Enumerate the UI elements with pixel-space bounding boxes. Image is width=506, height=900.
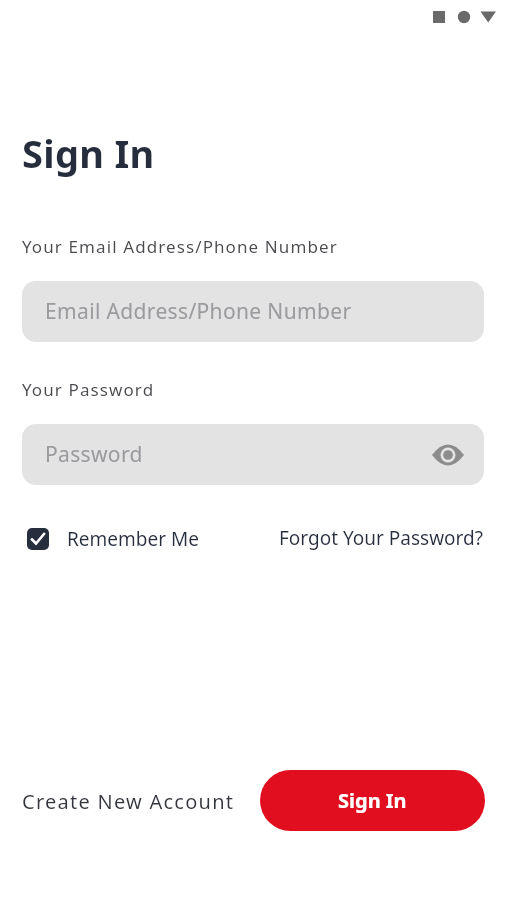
button[interactable]: Create New Account [22,788,235,815]
button[interactable]: Password [22,424,484,485]
staticText: Remember Me [67,526,199,552]
staticText: Your Email Address/Phone Number [22,235,338,258]
staticText: Your Password [22,378,155,401]
button[interactable]: Forgot Your Password? [279,525,484,551]
button[interactable]: Remember Me [27,526,199,552]
staticText: Password [45,440,143,469]
staticText: Sign In [338,787,407,814]
button[interactable]: Sign In [260,770,485,831]
button[interactable]: Email Address/Phone Number [22,281,484,342]
staticText: Sign In [22,127,155,179]
staticText: Email Address/Phone Number [45,297,352,326]
